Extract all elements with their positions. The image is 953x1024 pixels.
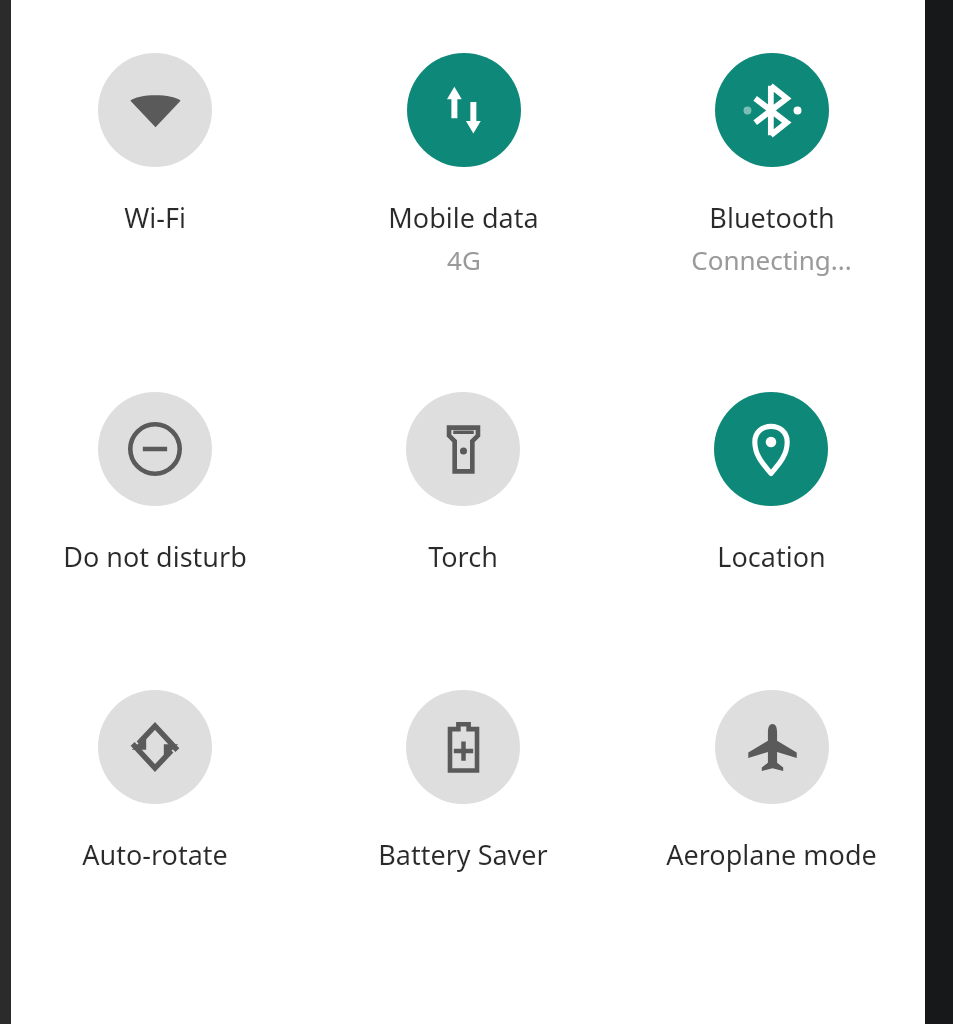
staticText: Torch <box>428 538 498 575</box>
other: Auto-rotate <box>98 690 212 804</box>
other: Aeroplane mode <box>715 690 829 804</box>
other: Battery Saver <box>406 690 520 804</box>
other: Bluetooth <box>715 53 829 167</box>
staticText: Bluetooth <box>709 199 835 236</box>
button[interactable]: Auto-rotate <box>82 690 228 873</box>
button[interactable]: Torch <box>406 392 520 575</box>
button[interactable]: Do not disturb <box>63 392 247 575</box>
staticText: Mobile data <box>388 199 539 236</box>
button[interactable]: Bluetooth <box>691 53 852 277</box>
staticText: Connecting... <box>691 242 852 277</box>
button[interactable]: Wi-Fi <box>98 53 212 236</box>
staticText: Location <box>717 538 826 575</box>
other: Mobile data <box>407 53 521 167</box>
staticText: Aeroplane mode <box>666 836 877 873</box>
staticText: Do not disturb <box>63 538 247 575</box>
staticText: 4G <box>447 242 481 277</box>
staticText: Battery Saver <box>378 836 548 873</box>
other: Do not disturb <box>98 392 212 506</box>
other: Wi-Fi <box>98 53 212 167</box>
button[interactable]: Location <box>714 392 828 575</box>
button[interactable]: Aeroplane mode <box>666 690 877 873</box>
staticText: Auto-rotate <box>82 836 228 873</box>
staticText: Wi-Fi <box>124 199 186 236</box>
button[interactable]: Mobile data <box>388 53 539 277</box>
button[interactable]: Battery Saver <box>378 690 548 873</box>
other: Location <box>714 392 828 506</box>
other: Torch <box>406 392 520 506</box>
